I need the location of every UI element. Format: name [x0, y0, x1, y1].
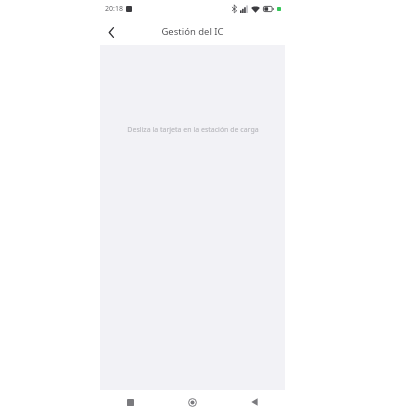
staticText: Gestión del IC: [161, 25, 224, 38]
staticText: Desliza la tarjeta en la estación de car…: [127, 125, 259, 135]
button[interactable]: Back: [100, 21, 122, 43]
button[interactable]: Back: [223, 390, 285, 414]
button[interactable]: Home: [161, 390, 223, 414]
button[interactable]: Recent apps: [100, 390, 161, 414]
staticText: 20:18: [105, 4, 123, 14]
